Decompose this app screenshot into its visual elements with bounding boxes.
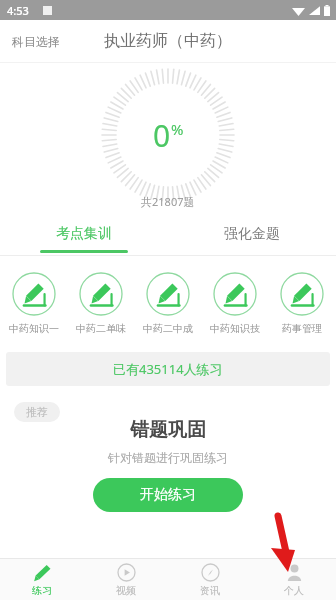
staticText: 中药二中成 bbox=[143, 322, 193, 335]
staticText: 中药二单味 bbox=[76, 322, 126, 335]
staticText: 已有435114人练习 bbox=[113, 360, 223, 378]
staticText: 资讯 bbox=[200, 584, 220, 597]
staticText: 强化金题 bbox=[224, 225, 280, 243]
staticText: 错题巩固 bbox=[130, 418, 206, 442]
button[interactable]: 强化金题 bbox=[168, 213, 336, 255]
button[interactable]: 视频 bbox=[84, 559, 168, 600]
button[interactable]: 练习 bbox=[0, 559, 84, 600]
button[interactable]: 开始练习 bbox=[93, 478, 243, 512]
staticText: 执业药师（中药） bbox=[104, 31, 232, 51]
button[interactable]: 中药知识技 bbox=[201, 266, 268, 344]
staticText: 推荐 bbox=[26, 405, 48, 419]
staticText: 共21807题 bbox=[141, 194, 195, 209]
button[interactable]: 资讯 bbox=[168, 559, 252, 600]
staticText: 科目选择 bbox=[12, 34, 60, 49]
staticText: % bbox=[171, 119, 184, 139]
button[interactable]: 推荐 bbox=[6, 396, 330, 600]
button[interactable]: 个人 bbox=[252, 559, 336, 600]
button[interactable]: 中药二单味 bbox=[67, 266, 134, 344]
staticText: 4:53 bbox=[7, 3, 29, 18]
staticText: 药事管理 bbox=[282, 322, 322, 335]
button[interactable]: 中药二中成 bbox=[134, 266, 201, 344]
staticText: 针对错题进行巩固练习 bbox=[108, 450, 228, 465]
button[interactable]: 药事管理 bbox=[268, 266, 335, 344]
staticText: 开始练习 bbox=[140, 486, 196, 504]
staticText: 0 bbox=[153, 115, 171, 156]
staticText: 视频 bbox=[116, 584, 136, 597]
staticText: 中药知识技 bbox=[210, 322, 260, 335]
button[interactable]: 考点集训 bbox=[0, 213, 168, 255]
staticText: 中药知识一 bbox=[9, 322, 59, 335]
staticText: 考点集训 bbox=[56, 225, 112, 243]
button[interactable]: 科目选择 bbox=[0, 26, 72, 57]
button[interactable]: 已有435114人练习 bbox=[6, 352, 330, 386]
staticText: 练习 bbox=[32, 584, 52, 597]
staticText: 个人 bbox=[284, 584, 304, 597]
button[interactable]: 中药知识一 bbox=[0, 266, 67, 344]
